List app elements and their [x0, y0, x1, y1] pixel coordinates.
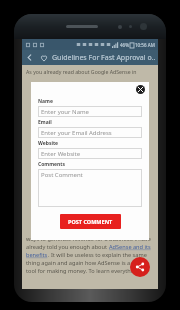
- staticText: 46%: [120, 42, 129, 48]
- button[interactable]: Enter Website: [38, 148, 142, 159]
- staticText: Guidelines For Fast Approval o..: [52, 53, 156, 63]
- button[interactable]: Close: [136, 85, 145, 94]
- staticText: . It will be useless to explain the same: [48, 251, 147, 259]
- staticText: ways to generate revenue for a business.…: [26, 235, 151, 243]
- staticText: Enter your Email Address: [41, 129, 112, 136]
- staticText: POST COMMENT: [68, 218, 113, 225]
- staticText: Name: [38, 98, 53, 105]
- staticText: thing again and again how AdSense is a g…: [26, 259, 146, 267]
- staticText: As you already read about Google AdSense…: [26, 68, 137, 75]
- button[interactable]: Post Comment: [38, 169, 142, 207]
- staticText: Enter your Name: [41, 108, 89, 115]
- staticText: 10:56 AM: [135, 42, 155, 48]
- staticText: benefits: [26, 251, 48, 259]
- button[interactable]: Share: [130, 257, 150, 277]
- button[interactable]: Enter your Email Address: [38, 127, 142, 138]
- button[interactable]: Favourite: [37, 51, 51, 65]
- staticText: Website: [38, 140, 59, 147]
- staticText: already told you enough about: [26, 243, 109, 251]
- staticText: Enter Website: [41, 150, 81, 157]
- staticText: Post Comment: [41, 171, 83, 179]
- button[interactable]: Back: [22, 50, 37, 65]
- button[interactable]: Enter your Name: [38, 106, 142, 117]
- staticText: tool for making money. To learn everythi…: [26, 267, 140, 275]
- staticText: AdSense and its: [109, 243, 151, 251]
- staticText: Comments: [38, 161, 66, 168]
- staticText: Email: [38, 119, 52, 126]
- button[interactable]: POST COMMENT: [60, 214, 121, 229]
